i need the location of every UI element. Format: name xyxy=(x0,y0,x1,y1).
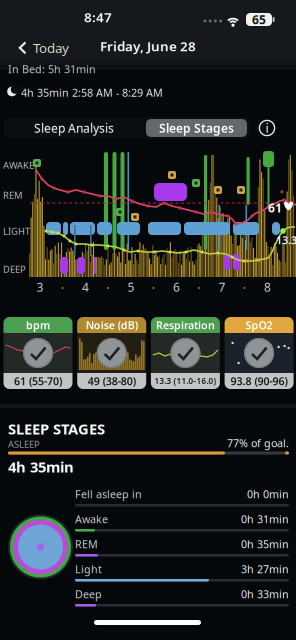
staticText: Deep xyxy=(75,587,102,601)
button[interactable]: Respiration xyxy=(151,317,220,389)
staticText: 4 xyxy=(82,279,89,295)
staticText: 13.3 (11.0-16.0) xyxy=(154,376,216,386)
staticText: 0h 33min xyxy=(241,587,289,601)
staticText: i xyxy=(265,120,268,136)
staticText: REM xyxy=(75,537,98,551)
staticText: 5 xyxy=(127,279,134,295)
staticText: 0h 35min xyxy=(241,537,289,551)
staticText: DEEP xyxy=(3,263,26,275)
staticText: Today xyxy=(33,39,69,57)
staticText: Sleep Stages xyxy=(159,120,234,136)
button[interactable]: Noise (dB) xyxy=(77,317,146,389)
staticText: SpO2 xyxy=(246,318,273,332)
staticText: 93.8 (90-96) xyxy=(231,374,288,388)
staticText: 3h 27min xyxy=(241,562,289,576)
staticText: Fell asleep in xyxy=(75,487,142,501)
staticText: In Bed: 5h 31min xyxy=(8,62,96,76)
staticText: Respiration xyxy=(156,318,215,332)
staticText: Sleep Analysis xyxy=(34,120,114,136)
staticText: 4h 35min xyxy=(8,457,74,476)
staticText: 49 (38-80) xyxy=(88,374,136,388)
staticText: 4h 35min 2:58 AM - 8:29 AM xyxy=(21,85,163,100)
button[interactable]: bpm xyxy=(3,317,72,389)
staticText: Noise (dB) xyxy=(86,318,138,332)
button[interactable]: SpO2 xyxy=(225,317,294,389)
button[interactable]: Info xyxy=(258,119,276,137)
staticText: 7 xyxy=(218,279,225,295)
staticText: SLEEP STAGES xyxy=(8,419,105,438)
staticText: 13.3 xyxy=(276,233,296,247)
button[interactable]: Today xyxy=(14,36,73,60)
staticText: 6 xyxy=(173,279,180,295)
staticText: 8 xyxy=(264,279,271,295)
staticText: 0h 31min xyxy=(241,512,289,526)
button[interactable]: Sleep Analysis xyxy=(14,117,134,139)
staticText: LIGHT xyxy=(3,225,30,237)
staticText: 77% of goal. xyxy=(227,436,289,450)
staticText: 0h 0min xyxy=(247,487,289,501)
staticText: bpm xyxy=(26,318,50,332)
button[interactable]: Sleep Stages xyxy=(146,119,247,137)
staticText: Awake xyxy=(75,512,108,526)
staticText: 61 xyxy=(268,200,282,216)
staticText: REM xyxy=(3,189,22,201)
staticText: AWAKE xyxy=(3,159,34,171)
staticText: 65 xyxy=(252,11,266,27)
staticText: ASLEEP xyxy=(8,438,40,450)
staticText: 3 xyxy=(36,279,43,295)
staticText: 61 (55-70) xyxy=(14,374,62,388)
staticText: Friday, June 28 xyxy=(100,37,196,55)
staticText: 8:47 xyxy=(84,8,112,26)
staticText: Light xyxy=(75,562,102,576)
